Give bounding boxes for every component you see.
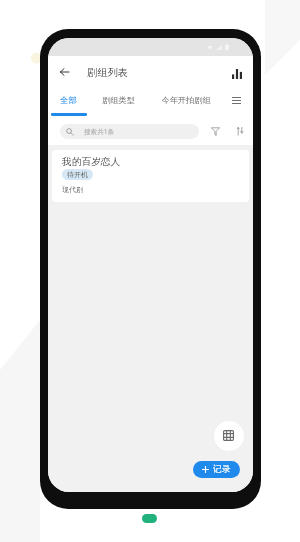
staticText: 搜索共1条 xyxy=(84,127,115,136)
button[interactable]: 今年开拍剧组 xyxy=(155,85,216,115)
button[interactable]: 统计 xyxy=(228,65,245,82)
button[interactable]: 返回 xyxy=(56,63,73,80)
staticText: 全部 xyxy=(60,95,77,105)
button[interactable]: 剧组类型 xyxy=(96,85,141,115)
button[interactable]: 搜索共1条 xyxy=(60,124,199,139)
staticText: 剧组列表 xyxy=(87,66,128,79)
staticText: 我的百岁恋人 xyxy=(62,156,121,168)
button[interactable]: 我的百岁恋人 xyxy=(52,150,249,202)
staticText: 今年开拍剧组 xyxy=(161,95,211,105)
button[interactable]: 排序 xyxy=(231,123,248,140)
staticText: 待开机 xyxy=(67,170,88,179)
button[interactable]: 列表显示方式 xyxy=(228,92,245,109)
button[interactable]: 全部 xyxy=(54,85,82,115)
staticText: 剧组类型 xyxy=(102,95,135,105)
button[interactable]: 记录 xyxy=(193,461,240,478)
button[interactable]: 切换网格视图 xyxy=(214,421,244,451)
button[interactable]: 筛选 xyxy=(207,123,224,140)
staticText: 记录 xyxy=(213,464,231,475)
staticText: 现代剧 xyxy=(62,185,83,194)
